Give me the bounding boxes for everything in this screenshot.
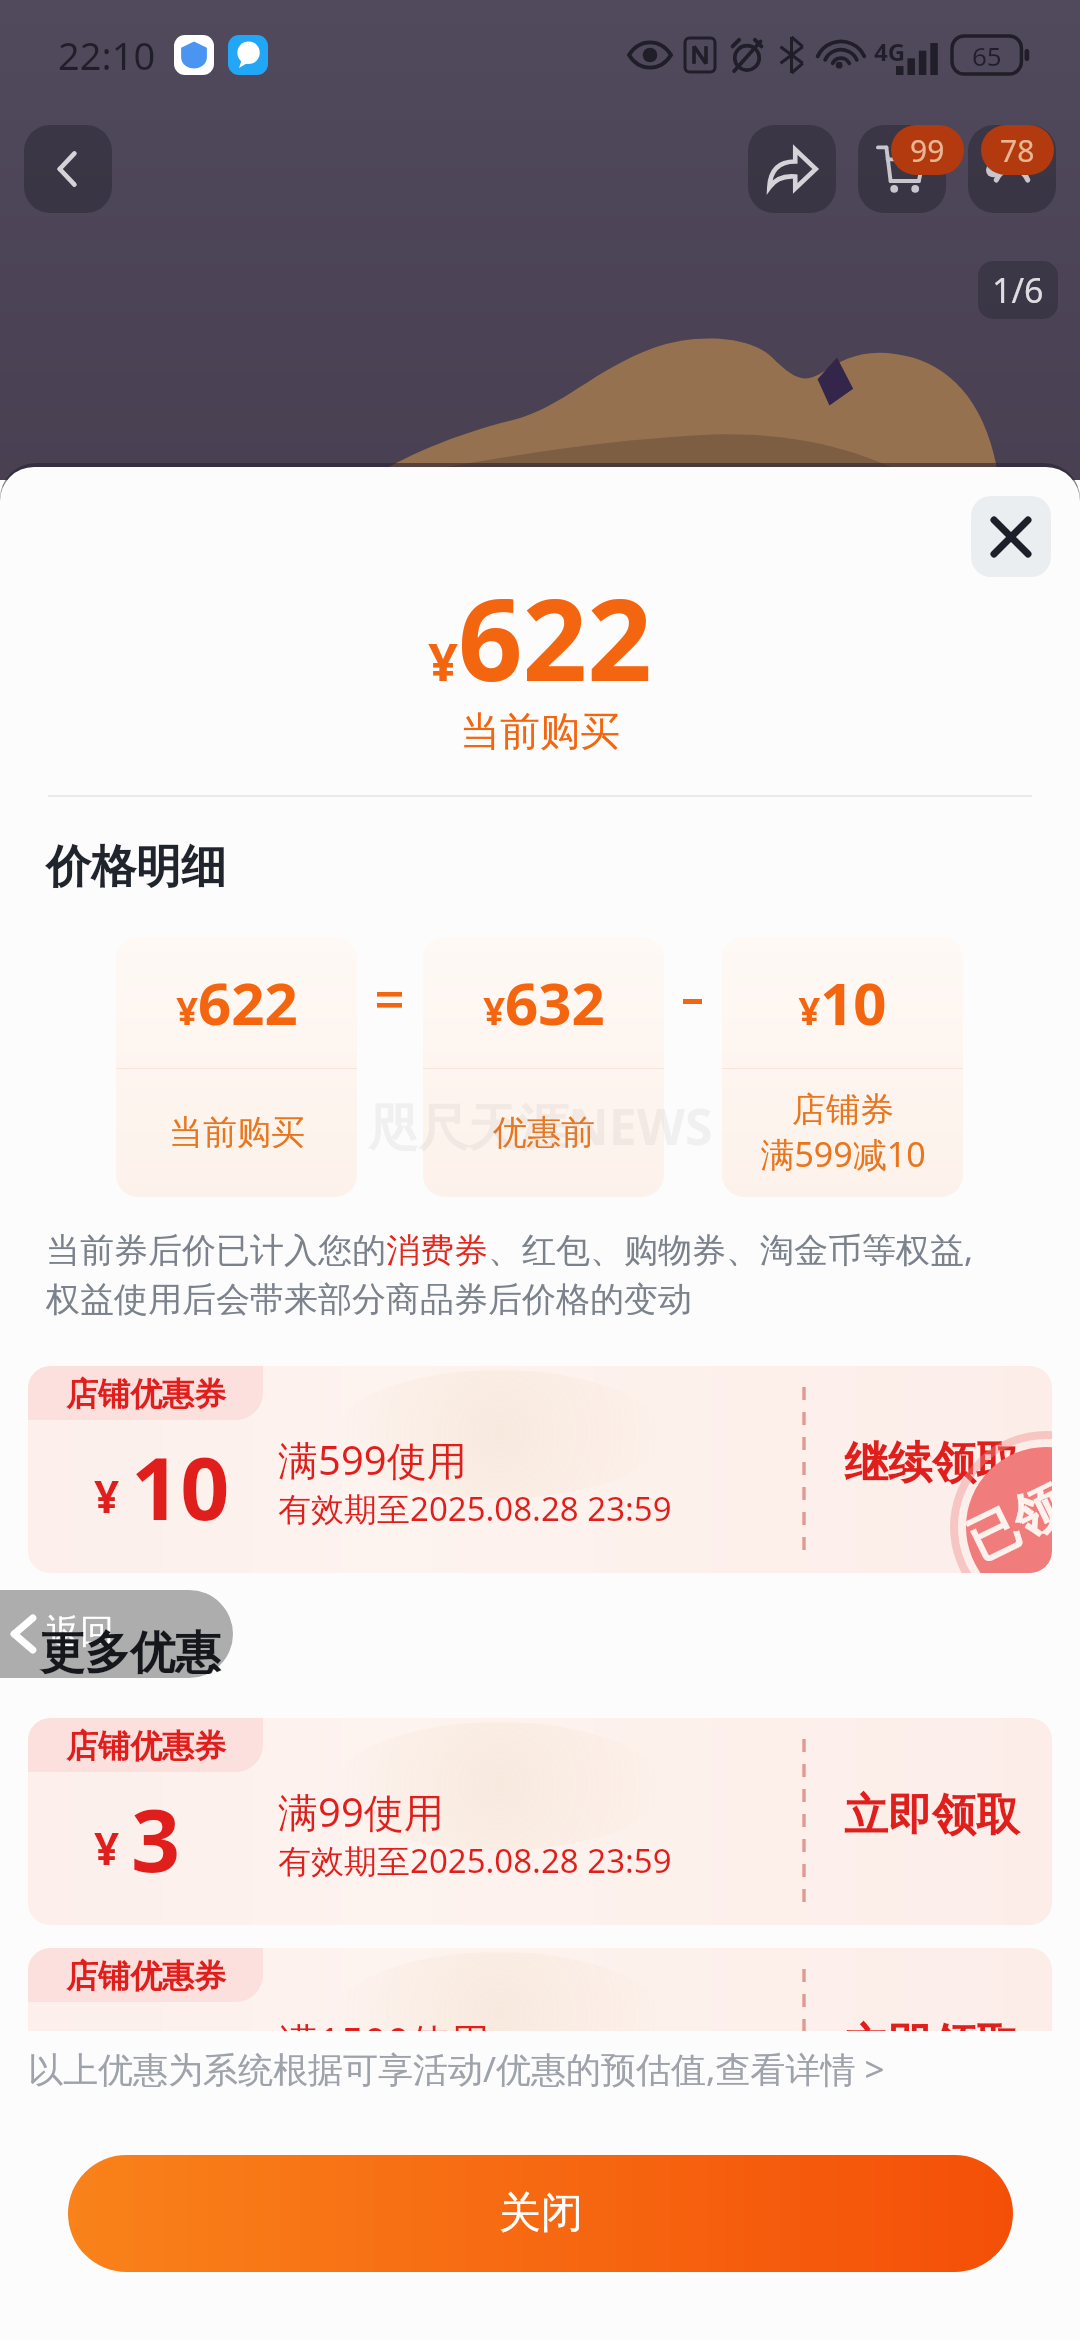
staticText: 15 — [131, 2010, 230, 2127]
staticText: 当前购买 — [169, 1111, 305, 1154]
staticText: 立即领取 — [844, 1788, 1020, 1843]
staticText: ¥622 — [0, 560, 1080, 714]
button[interactable]: More — [968, 125, 1056, 213]
staticText: 更多优惠 — [40, 1625, 220, 1682]
button[interactable]: Back — [24, 125, 112, 213]
staticText: 店铺优惠券 — [66, 1726, 226, 1766]
staticText: 店铺优惠券 — [66, 1956, 226, 1996]
staticText: 继续领取 — [844, 1436, 1020, 1491]
staticText: 有效期至2025.08.28 23:59 — [278, 1486, 672, 1531]
staticText: 有效期至2025.08.28 23:59 — [278, 2068, 672, 2113]
staticText: 价格明细 — [46, 839, 226, 896]
staticText: ¥ — [94, 1466, 120, 1526]
staticText: 立即领取 — [844, 2018, 1020, 2073]
staticText: 99 — [910, 130, 945, 171]
staticText: 当前券后价已计入您的消费券、红包、购物券、淘金币等权益, 权益使用后会带来部分商… — [46, 1226, 1034, 1321]
staticText: 4G — [874, 35, 906, 68]
staticText: 满599使用 — [278, 1432, 467, 1487]
staticText: 10 — [131, 1428, 230, 1545]
staticText: 78 — [1000, 130, 1035, 171]
staticText: 满1500使用 — [278, 2014, 490, 2069]
staticText: 65 — [972, 38, 1002, 73]
staticText: 店铺优惠券 — [66, 1374, 226, 1414]
button[interactable]: Share — [748, 125, 836, 213]
staticText: 有效期至2025.08.28 23:59 — [278, 1838, 672, 1883]
button[interactable]: Close — [971, 496, 1051, 577]
staticText: 咫尺天涯NEWS — [368, 1092, 713, 1160]
staticText: ¥622 — [176, 963, 298, 1042]
button[interactable]: 店铺优惠券 — [28, 1718, 1052, 1925]
staticText: 以上优惠为系统根据可享活动/优惠的预估值,查看详情 > — [28, 2045, 885, 2093]
staticText: 1/6 — [992, 267, 1044, 313]
staticText: 关闭 — [499, 2187, 583, 2240]
staticText: ¥ — [94, 2048, 120, 2108]
button[interactable]: 店铺优惠券 — [28, 1366, 1052, 1573]
staticText: 店铺券 — [792, 1088, 894, 1131]
staticText: ¥632 — [483, 963, 605, 1042]
staticText: ¥ — [94, 1818, 120, 1878]
staticText: 优惠前 — [493, 1111, 595, 1154]
button[interactable]: Cart — [858, 125, 946, 213]
staticText: 返回 — [46, 1610, 114, 1653]
staticText: 已领 — [957, 1473, 1052, 1573]
staticText: 当前购买 — [0, 706, 1080, 756]
button[interactable]: Back — [0, 1590, 233, 1678]
staticText: 3 — [131, 1780, 181, 1897]
staticText: 满99使用 — [278, 1784, 444, 1839]
staticText: 22:10 — [58, 29, 156, 81]
staticText: 满599减10 — [760, 1131, 926, 1177]
button[interactable]: 关闭 — [68, 2155, 1013, 2272]
staticText: ¥10 — [798, 963, 887, 1042]
button[interactable]: 店铺优惠券 — [28, 1948, 1052, 2155]
